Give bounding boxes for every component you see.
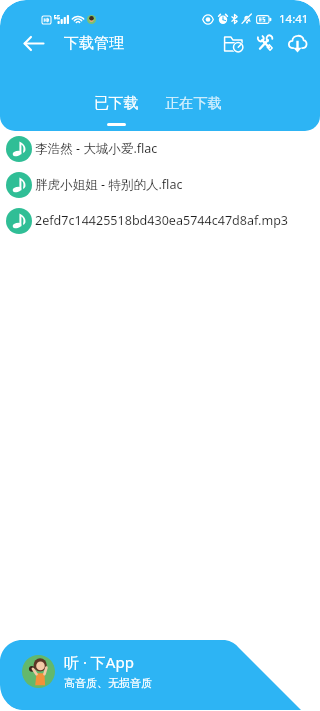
button[interactable]: 正在下载 bbox=[153, 94, 233, 112]
staticText: 正在下载 bbox=[165, 94, 222, 112]
button[interactable]: Downloads bbox=[281, 27, 313, 59]
button[interactable]: 听 · 下App bbox=[0, 636, 320, 706]
staticText: 胖虎小姐姐 - 特别的人.flac bbox=[35, 176, 183, 193]
button[interactable]: 已下载 bbox=[76, 94, 156, 126]
button[interactable]: 李浩然 - 大城小爱.flac bbox=[0, 131, 320, 167]
staticText: 下载管理 bbox=[64, 34, 124, 53]
button[interactable]: Back bbox=[19, 29, 48, 58]
staticText: 高音质、无损音质 bbox=[64, 676, 152, 690]
button[interactable]: Settings bbox=[249, 27, 281, 59]
button[interactable]: Download history bbox=[217, 27, 249, 59]
staticText: 已下载 bbox=[94, 94, 139, 113]
button[interactable]: 2efd7c14425518bd430ea5744c47d8af.mp3 bbox=[0, 203, 320, 239]
staticText: 李浩然 - 大城小爱.flac bbox=[35, 140, 158, 157]
staticText: 14:41 bbox=[279, 11, 309, 27]
button[interactable]: 胖虎小姐姐 - 特别的人.flac bbox=[0, 167, 320, 203]
staticText: 2efd7c14425518bd430ea5744c47d8af.mp3 bbox=[35, 212, 289, 229]
staticText: 听 · 下App bbox=[64, 652, 134, 672]
